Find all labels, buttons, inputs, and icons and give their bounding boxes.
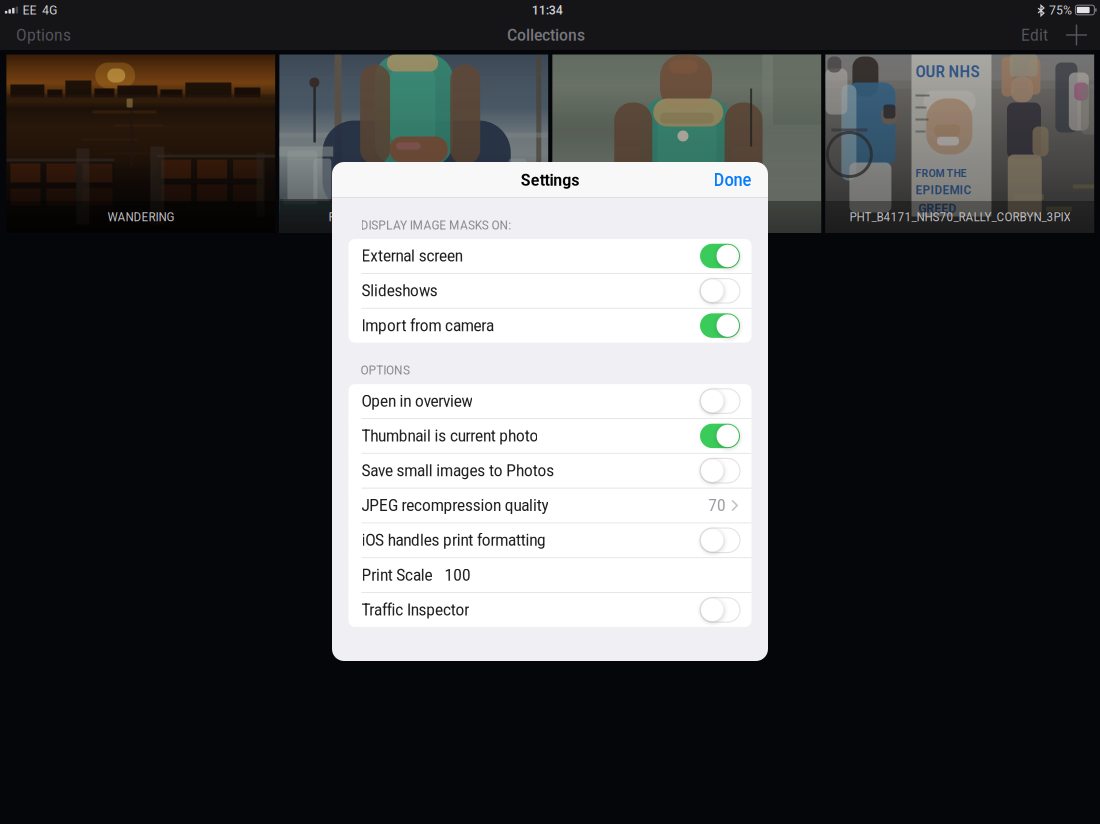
button[interactable]: JPEG recompression quality xyxy=(348,488,751,522)
staticText: Print Scale xyxy=(361,566,432,585)
button[interactable]: Import from camera xyxy=(348,309,751,343)
button[interactable]: Thumbnail is current photo xyxy=(348,419,751,453)
button[interactable]: External screen xyxy=(348,239,751,273)
staticText: WANDERING xyxy=(107,210,174,224)
staticText: DISPLAY IMAGE MASKS ON: xyxy=(360,217,511,232)
staticText: External screen xyxy=(361,246,463,266)
button[interactable]: Save small images to Photos xyxy=(348,454,751,488)
staticText: 70 xyxy=(708,496,726,515)
button[interactable]: Options xyxy=(7,20,80,50)
staticText: PHT_B4171_NHS70_RALLY_CORBYN_3PIX xyxy=(849,210,1070,224)
staticText: JPEG recompression quality xyxy=(361,496,548,515)
staticText: OPTIONS xyxy=(360,363,410,378)
staticText: Import from camera xyxy=(361,316,494,335)
staticText: GREED xyxy=(918,200,956,216)
staticText: 11:34 xyxy=(532,2,563,18)
staticText: Settings xyxy=(521,170,579,190)
staticText: Open in overview xyxy=(361,392,472,411)
button[interactable]: Done xyxy=(705,162,759,198)
button[interactable]: Open in overview xyxy=(348,384,751,418)
staticText: Slideshows xyxy=(361,281,438,300)
staticText: Options xyxy=(16,25,71,45)
staticText: EPIDEMIC xyxy=(915,182,971,197)
staticText: Save small images to Photos xyxy=(361,461,554,480)
staticText: OUR NHS xyxy=(915,62,979,81)
button[interactable]: Edit xyxy=(1012,20,1057,50)
button[interactable]: Add collection xyxy=(1057,20,1096,50)
staticText: iOS handles print formatting xyxy=(361,531,546,550)
staticText: Traffic Inspector xyxy=(361,600,469,619)
staticText: 4G xyxy=(42,2,57,18)
button[interactable]: Traffic Inspector xyxy=(348,593,751,627)
staticText: 100 xyxy=(444,566,471,585)
staticText: Collections xyxy=(507,25,585,45)
staticText: 75% xyxy=(1049,2,1072,18)
staticText: FROM THE xyxy=(915,166,966,180)
staticText: PHT_B4173_MOTIVATION_12PIX xyxy=(328,210,499,224)
button[interactable]: iOS handles print formatting xyxy=(348,523,751,557)
staticText: Thumbnail is current photo xyxy=(361,426,538,445)
staticText: Done xyxy=(713,170,751,190)
button[interactable]: Slideshows xyxy=(348,274,751,308)
staticText: Edit xyxy=(1021,25,1048,45)
button[interactable]: Print Scale xyxy=(348,558,751,592)
staticText: EE xyxy=(22,2,36,18)
